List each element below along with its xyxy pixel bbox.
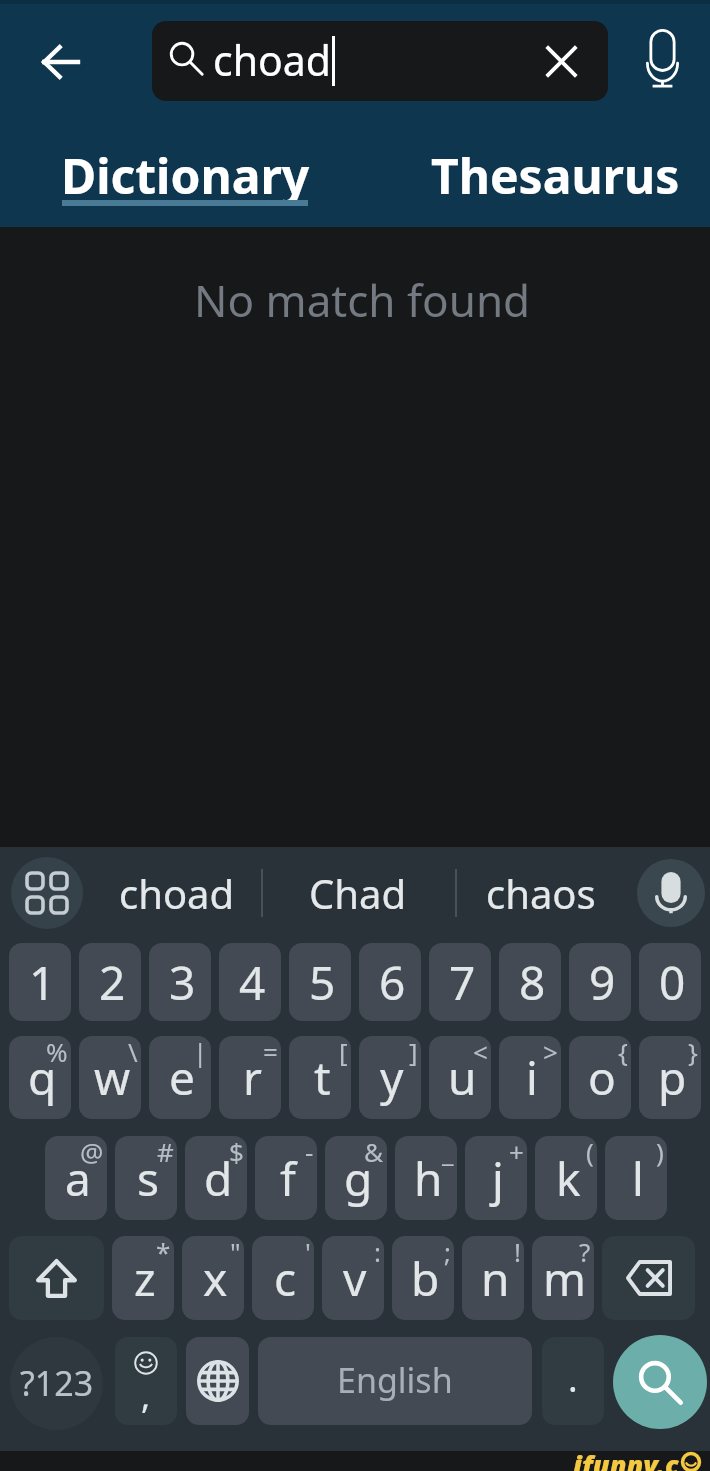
button[interactable]: Clear: [534, 34, 588, 88]
staticText: 6: [379, 951, 406, 1014]
button[interactable]: :: [322, 1236, 384, 1320]
button[interactable]: &: [325, 1136, 387, 1220]
button[interactable]: ": [182, 1236, 244, 1320]
button[interactable]: Shift: [9, 1236, 104, 1320]
button[interactable]: Emoji: [115, 1337, 177, 1425]
staticText: ): [656, 1136, 664, 1169]
button[interactable]: (: [535, 1136, 597, 1220]
button[interactable]: ': [252, 1236, 314, 1320]
staticText: Dictionary: [61, 143, 310, 208]
staticText: 0: [659, 951, 686, 1014]
button[interactable]: !: [462, 1236, 524, 1320]
staticText: 1: [29, 951, 56, 1014]
staticText: choad: [119, 866, 235, 920]
staticText: |: [193, 1036, 208, 1069]
button[interactable]: ;: [392, 1236, 454, 1320]
staticText: o: [588, 1046, 616, 1109]
button[interactable]: Backspace: [602, 1236, 695, 1320]
staticText: ;: [444, 1236, 451, 1269]
button[interactable]: 0: [639, 943, 701, 1021]
button[interactable]: #: [115, 1136, 177, 1220]
button[interactable]: =: [219, 1036, 281, 1119]
button[interactable]: \: [79, 1036, 141, 1119]
staticText: ": [230, 1236, 241, 1269]
button[interactable]: 6: [359, 943, 421, 1021]
staticText: v: [343, 1247, 367, 1310]
staticText: ?: [579, 1236, 591, 1269]
staticText: choad: [213, 32, 332, 88]
button[interactable]: *: [112, 1236, 174, 1320]
staticText: ]: [409, 1036, 418, 1069]
staticText: x: [203, 1247, 228, 1310]
button[interactable]: 3: [149, 943, 211, 1021]
button[interactable]: choad: [97, 853, 257, 933]
staticText: [: [339, 1036, 348, 1069]
button[interactable]: $: [185, 1136, 247, 1220]
staticText: p: [658, 1046, 687, 1109]
button[interactable]: ?: [532, 1236, 594, 1320]
staticText: <: [473, 1036, 488, 1069]
staticText: Chad: [309, 866, 407, 920]
button[interactable]: choad: [152, 21, 608, 101]
button[interactable]: .: [542, 1337, 604, 1425]
staticText: r: [243, 1046, 262, 1109]
button[interactable]: Search: [613, 1335, 707, 1429]
button[interactable]: -: [255, 1136, 317, 1220]
button[interactable]: 2: [79, 943, 141, 1021]
staticText: 4: [239, 951, 266, 1014]
staticText: s: [137, 1147, 160, 1210]
staticText: g: [344, 1147, 373, 1210]
button[interactable]: 7: [429, 943, 491, 1021]
staticText: &: [364, 1136, 384, 1169]
staticText: $: [229, 1136, 244, 1169]
button[interactable]: Change language: [186, 1337, 249, 1425]
button[interactable]: Clipboard: [11, 857, 83, 929]
button[interactable]: Back: [22, 24, 98, 100]
button[interactable]: ): [605, 1136, 667, 1220]
button[interactable]: English: [258, 1337, 532, 1425]
button[interactable]: 4: [219, 943, 281, 1021]
button[interactable]: Dictionary: [10, 123, 360, 227]
button[interactable]: ]: [359, 1036, 421, 1119]
button[interactable]: +: [465, 1136, 527, 1220]
button[interactable]: }: [639, 1036, 701, 1119]
staticText: 8: [519, 951, 546, 1014]
staticText: No match found: [194, 270, 531, 330]
staticText: .: [568, 1354, 578, 1403]
staticText: k: [556, 1147, 581, 1210]
button[interactable]: 9: [569, 943, 631, 1021]
staticText: >: [543, 1036, 558, 1069]
button[interactable]: <: [429, 1036, 491, 1119]
staticText: a: [65, 1147, 91, 1210]
button[interactable]: {: [569, 1036, 631, 1119]
button[interactable]: @: [45, 1136, 107, 1220]
staticText: #: [157, 1136, 174, 1169]
button[interactable]: Thesaurus: [380, 123, 710, 227]
button[interactable]: Voice input: [637, 859, 705, 927]
staticText: ': [305, 1236, 311, 1269]
staticText: =: [263, 1036, 278, 1069]
button[interactable]: 5: [289, 943, 351, 1021]
button[interactable]: %: [9, 1036, 71, 1119]
staticText: (: [586, 1136, 594, 1169]
staticText: w: [94, 1046, 131, 1109]
button[interactable]: chaos: [463, 853, 618, 933]
staticText: {: [618, 1036, 628, 1069]
button[interactable]: ?123: [10, 1337, 103, 1430]
button[interactable]: |: [149, 1036, 211, 1119]
staticText: i: [526, 1046, 538, 1109]
button[interactable]: 1: [9, 943, 71, 1021]
button[interactable]: 8: [499, 943, 561, 1021]
staticText: -: [305, 1136, 314, 1169]
staticText: 7: [449, 951, 476, 1014]
staticText: b: [411, 1247, 440, 1310]
staticText: English: [337, 1357, 453, 1403]
staticText: @: [80, 1136, 104, 1169]
button[interactable]: _: [395, 1136, 457, 1220]
button[interactable]: Voice search: [624, 20, 700, 96]
staticText: Thesaurus: [431, 143, 680, 208]
staticText: h: [414, 1147, 443, 1210]
button[interactable]: >: [499, 1036, 561, 1119]
button[interactable]: Chad: [280, 853, 435, 933]
button[interactable]: [: [289, 1036, 351, 1119]
